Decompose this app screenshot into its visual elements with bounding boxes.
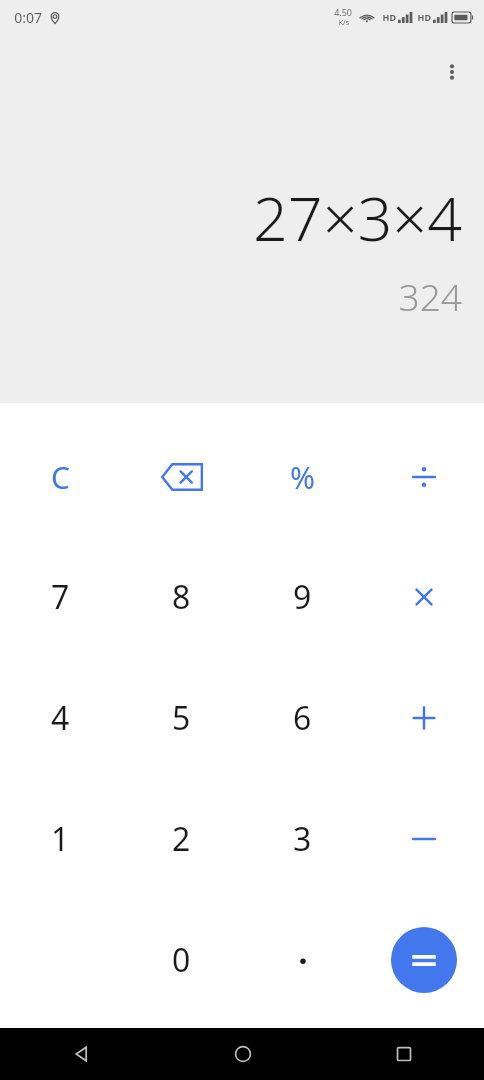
- button[interactable]: Home: [162, 1028, 323, 1080]
- staticText: C: [51, 457, 70, 498]
- button[interactable]: 6: [242, 657, 363, 778]
- button[interactable]: 9: [242, 537, 363, 657]
- button[interactable]: 7: [0, 537, 121, 657]
- staticText: 0: [172, 938, 191, 982]
- button[interactable]: Multiply: [363, 537, 484, 657]
- button[interactable]: 0: [121, 899, 242, 1020]
- staticText: 4: [51, 696, 70, 740]
- staticText: 0:07: [14, 8, 42, 27]
- button[interactable]: Plus: [363, 657, 484, 778]
- button[interactable]: Back: [0, 1028, 162, 1080]
- button[interactable]: 3: [242, 778, 363, 899]
- staticText: 3: [293, 817, 312, 861]
- button[interactable]: 8: [121, 537, 242, 657]
- button[interactable]: [242, 899, 363, 1020]
- button[interactable]: 1: [0, 778, 121, 899]
- button[interactable]: 4: [0, 657, 121, 778]
- staticText: 2: [172, 817, 191, 861]
- staticText: 5: [172, 696, 191, 740]
- button[interactable]: Backspace: [121, 417, 242, 537]
- button[interactable]: Equals: [363, 899, 484, 1020]
- button[interactable]: More options: [430, 50, 474, 94]
- staticText: 4.50: [334, 6, 352, 18]
- button[interactable]: Divide: [363, 417, 484, 537]
- staticText: 324: [398, 271, 462, 321]
- staticText: %: [290, 457, 315, 498]
- staticText: 27×3×4: [253, 176, 462, 259]
- staticText: HD: [382, 11, 396, 23]
- button[interactable]: Minus: [363, 778, 484, 899]
- staticText: 9: [293, 575, 312, 619]
- button[interactable]: C: [0, 417, 121, 537]
- staticText: K/s: [338, 18, 349, 28]
- button[interactable]: 5: [121, 657, 242, 778]
- staticText: 8: [172, 575, 191, 619]
- staticText: 7: [51, 575, 70, 619]
- button[interactable]: Recents: [323, 1028, 484, 1080]
- staticText: 1: [51, 817, 70, 861]
- staticText: 6: [293, 696, 312, 740]
- button[interactable]: %: [242, 417, 363, 537]
- button[interactable]: 2: [121, 778, 242, 899]
- staticText: HD: [417, 11, 431, 23]
